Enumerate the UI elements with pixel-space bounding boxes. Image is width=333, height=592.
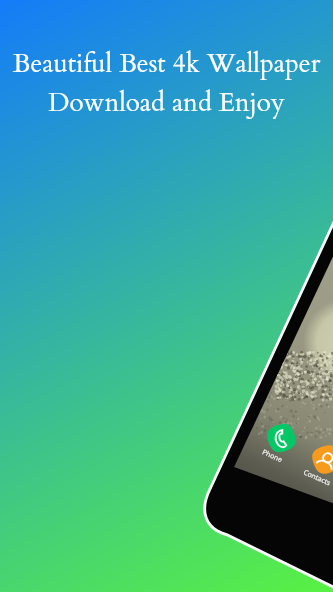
- button[interactable]: Beautiful Best 4k Wallpaper Download and…: [0, 46, 333, 121]
